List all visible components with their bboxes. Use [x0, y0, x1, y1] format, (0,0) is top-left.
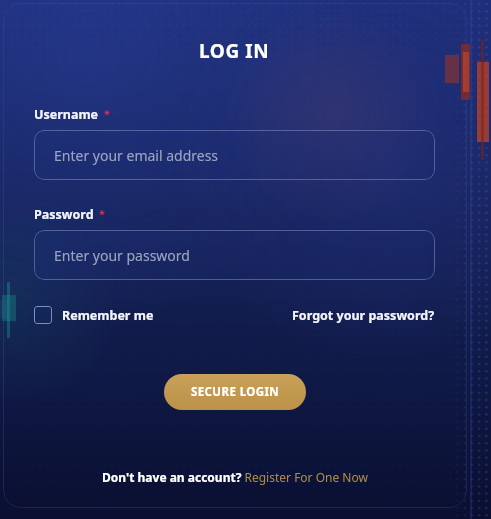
- staticText: Username: [34, 106, 99, 123]
- staticText: Remember me: [62, 307, 154, 324]
- button[interactable]: Enter your email address: [34, 130, 435, 180]
- staticText: Don't have an account? Register For One …: [102, 469, 368, 485]
- staticText: *: [99, 206, 105, 221]
- staticText: SECURE LOGIN: [191, 384, 280, 400]
- staticText: Forgot your password?: [292, 307, 435, 324]
- button[interactable]: Don't have an account? Register For One …: [98, 465, 372, 489]
- staticText: Password: [34, 206, 94, 223]
- button[interactable]: Forgot your password?: [292, 303, 435, 328]
- staticText: *: [104, 106, 110, 121]
- button[interactable]: SECURE LOGIN: [164, 374, 306, 410]
- button[interactable]: Remember me: [34, 302, 154, 328]
- staticText: LOG IN: [199, 38, 270, 64]
- staticText: Enter your email address: [54, 146, 219, 165]
- button[interactable]: Enter your password: [34, 230, 435, 280]
- staticText: Enter your password: [54, 246, 190, 265]
